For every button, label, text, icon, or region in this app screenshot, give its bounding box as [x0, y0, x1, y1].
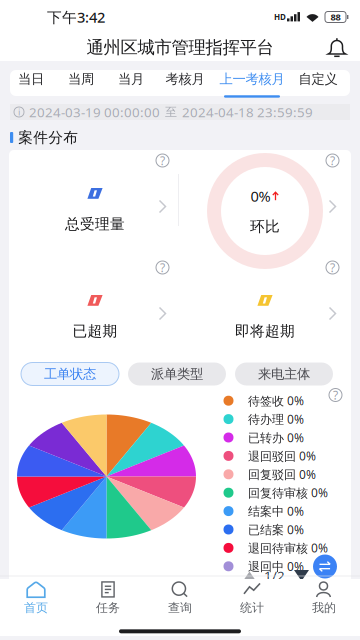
- staticText: ?: [330, 259, 335, 275]
- button[interactable]: 总受理量: [10, 146, 180, 253]
- button[interactable]: 上一考核月: [214, 70, 290, 96]
- button[interactable]: 工单状态: [21, 362, 119, 385]
- staticText: 1/2: [264, 567, 285, 584]
- staticText: 已超期: [72, 322, 117, 340]
- button[interactable]: 自定义: [290, 70, 346, 96]
- staticText: 0%: [250, 186, 270, 206]
- button[interactable]: 来电主体: [235, 362, 333, 385]
- button[interactable]: 即将超期: [180, 253, 350, 360]
- staticText: 至: [165, 105, 177, 119]
- staticText: 当周: [68, 71, 94, 87]
- button[interactable]: 0%: [180, 146, 350, 253]
- staticText: 回复待审核 0%: [248, 485, 328, 501]
- staticText: 当日: [18, 71, 44, 87]
- button[interactable]: 切换图表: [311, 563, 339, 587]
- staticText: 任务: [96, 600, 120, 615]
- staticText: 结案中 0%: [248, 503, 304, 519]
- button[interactable]: 统计: [216, 576, 288, 621]
- staticText: 上一考核月: [219, 71, 284, 87]
- button[interactable]: 任务: [72, 576, 144, 621]
- staticText: 已结案 0%: [248, 521, 304, 537]
- button[interactable]: 下一页: [294, 569, 309, 581]
- button[interactable]: 查询: [144, 576, 216, 621]
- button[interactable]: 已超期: [10, 253, 180, 360]
- button[interactable]: 当日: [6, 70, 56, 96]
- staticText: HD: [274, 12, 286, 22]
- staticText: 待办理 0%: [248, 411, 304, 427]
- staticText: 自定义: [298, 71, 337, 87]
- staticText: 88: [330, 11, 340, 23]
- staticText: ?: [160, 152, 165, 168]
- staticText: ?: [330, 152, 335, 168]
- button[interactable]: 通知: [314, 34, 360, 61]
- staticText: 下午3:42: [47, 7, 105, 27]
- staticText: 待签收 0%: [248, 393, 304, 409]
- staticText: 工单状态: [44, 366, 96, 382]
- button[interactable]: 派单类型: [128, 362, 226, 385]
- staticText: 来电主体: [258, 366, 310, 382]
- staticText: 通州区城市管理指挥平台: [86, 37, 273, 58]
- staticText: 退回待审核 0%: [248, 540, 328, 556]
- staticText: 当月: [118, 71, 144, 87]
- button[interactable]: 考核月: [156, 70, 214, 96]
- button[interactable]: 当周: [56, 70, 106, 96]
- staticText: 查询: [168, 600, 192, 615]
- button[interactable]: 当月: [106, 70, 156, 96]
- button[interactable]: 首页: [0, 576, 72, 621]
- staticText: 退回驳回 0%: [248, 448, 316, 464]
- button[interactable]: 我的: [288, 576, 360, 621]
- staticText: 退回中 0%: [248, 558, 304, 574]
- staticText: ?: [160, 259, 165, 275]
- staticText: 案件分布: [18, 128, 78, 146]
- staticText: 2024-03-19 00:00:00: [29, 103, 160, 121]
- staticText: 统计: [240, 600, 264, 615]
- staticText: ?: [333, 387, 338, 403]
- staticText: 考核月: [165, 71, 204, 87]
- staticText: 我的: [312, 600, 336, 615]
- staticText: 首页: [24, 600, 48, 615]
- staticText: 回复驳回 0%: [248, 466, 316, 482]
- staticText: 总受理量: [65, 215, 125, 233]
- staticText: 即将超期: [235, 322, 295, 340]
- staticText: 环比: [250, 218, 280, 236]
- staticText: i: [18, 106, 20, 118]
- button[interactable]: 上一页: [244, 571, 255, 580]
- staticText: 已转办 0%: [248, 429, 304, 445]
- staticText: 派单类型: [151, 366, 203, 382]
- staticText: 2024-04-18 23:59:59: [182, 103, 313, 121]
